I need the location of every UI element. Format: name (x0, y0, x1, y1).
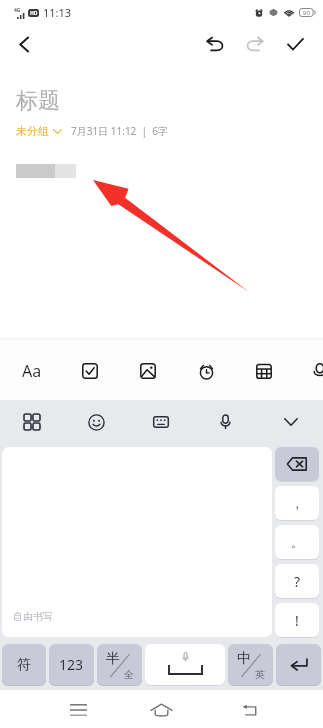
staticText: 7月31日 11:12 | 6字 (71, 124, 168, 138)
staticText: ， (291, 496, 303, 511)
button[interactable]: Done (275, 24, 315, 64)
button[interactable]: Redo (235, 24, 275, 64)
staticText: 4G (14, 7, 21, 14)
button[interactable]: 123 (49, 644, 94, 685)
staticText: 123 (59, 655, 84, 674)
button[interactable]: Undo (195, 24, 235, 64)
button[interactable]: table (235, 342, 293, 400)
button[interactable]: Voice input (193, 400, 258, 444)
button[interactable]: space (145, 644, 225, 685)
button[interactable]: Back (203, 690, 323, 728)
staticText: ? (294, 572, 301, 591)
staticText: 自由书写 (13, 610, 53, 623)
button[interactable]: 符 (2, 644, 46, 685)
button[interactable]: Aa (3, 342, 61, 400)
button[interactable]: image (119, 342, 177, 400)
staticText: 标题 (16, 87, 60, 115)
button[interactable]: check (61, 342, 119, 400)
staticText: ! (295, 611, 299, 630)
staticText: 11:13 (43, 5, 72, 20)
button[interactable]: 。 (275, 525, 319, 559)
button[interactable]: 中英 (228, 644, 273, 685)
button[interactable]: Symbols (0, 400, 64, 444)
button[interactable]: ? (275, 564, 319, 598)
button[interactable]: Emoji (64, 400, 128, 444)
staticText: 英 (255, 668, 265, 681)
button[interactable]: Home (120, 690, 203, 728)
staticText: 。 (291, 535, 303, 550)
button[interactable]: more (293, 342, 323, 400)
staticText: 90 (303, 9, 310, 17)
button[interactable]: enter (276, 644, 321, 685)
button[interactable]: Hide keyboard (258, 400, 323, 444)
staticText: 未分组 (16, 124, 49, 138)
staticText: 符 (17, 656, 31, 674)
staticText: HD (30, 10, 38, 17)
button[interactable]: ! (275, 603, 319, 637)
staticText: 全 (124, 668, 134, 681)
button[interactable]: 未分组 (16, 124, 62, 138)
button[interactable]: ， (275, 486, 319, 520)
button[interactable]: Back (7, 27, 41, 61)
button[interactable]: Recents (0, 690, 120, 728)
button[interactable]: 半全 (97, 644, 142, 685)
button[interactable]: alarm (177, 342, 235, 400)
button[interactable]: Delete (275, 447, 319, 481)
staticText: Aa (22, 360, 42, 382)
staticText: 半 (106, 650, 120, 668)
staticText: 中 (237, 650, 251, 668)
button[interactable]: Keyboard (128, 400, 193, 444)
